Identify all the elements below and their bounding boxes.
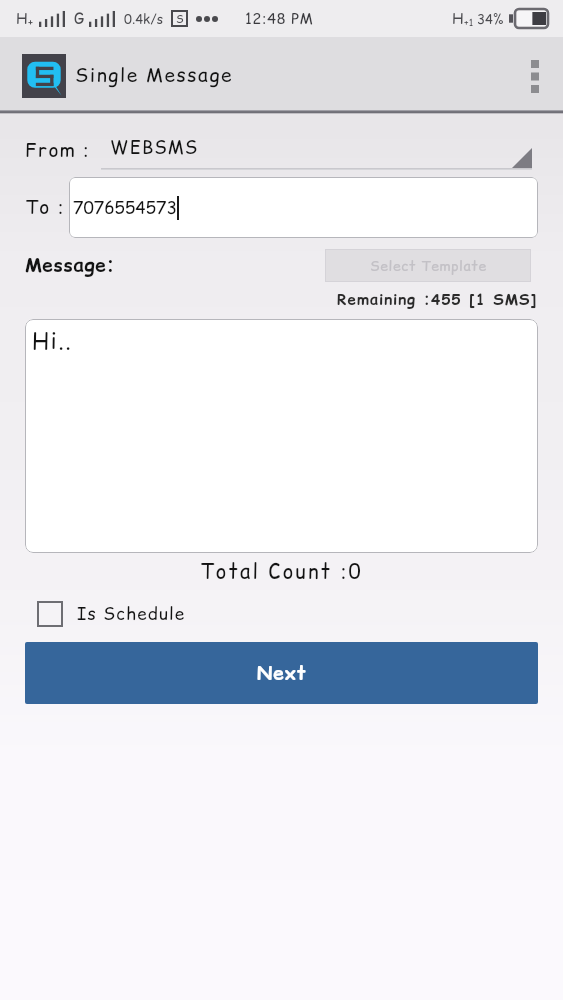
button[interactable]: 7076554573	[69, 177, 538, 238]
staticText: G	[74, 8, 85, 29]
staticText: Total Count :0	[0, 558, 563, 586]
staticText: H	[16, 8, 28, 29]
staticText: Select Template	[370, 256, 487, 276]
staticText: From :	[25, 137, 91, 164]
staticText: 7076554573	[73, 196, 177, 220]
staticText: 34%	[477, 10, 504, 28]
button[interactable]: Hi..	[25, 319, 538, 553]
button[interactable]: Next	[25, 642, 538, 704]
staticText: Remaining :455 [1 SMS]	[337, 289, 538, 310]
staticText: WEBSMS	[110, 135, 199, 160]
staticText: To :	[25, 194, 65, 221]
staticText: Message:	[25, 252, 116, 279]
staticText: +1	[464, 15, 474, 29]
staticText: Is Schedule	[77, 602, 186, 626]
button[interactable]: More options	[507, 48, 563, 104]
button[interactable]: WEBSMS	[101, 132, 538, 169]
staticText: Next	[257, 660, 307, 687]
staticText: S	[176, 11, 184, 26]
button[interactable]: Select Template	[325, 249, 531, 282]
staticText: Hi..	[32, 326, 73, 357]
staticText: +	[28, 14, 34, 29]
button[interactable]: Is Schedule	[37, 601, 186, 627]
staticText: H	[452, 8, 464, 29]
staticText: Single Message	[75, 62, 234, 89]
staticText: 12:48 PM	[245, 8, 314, 29]
staticText: 0.4k/s	[124, 10, 164, 28]
